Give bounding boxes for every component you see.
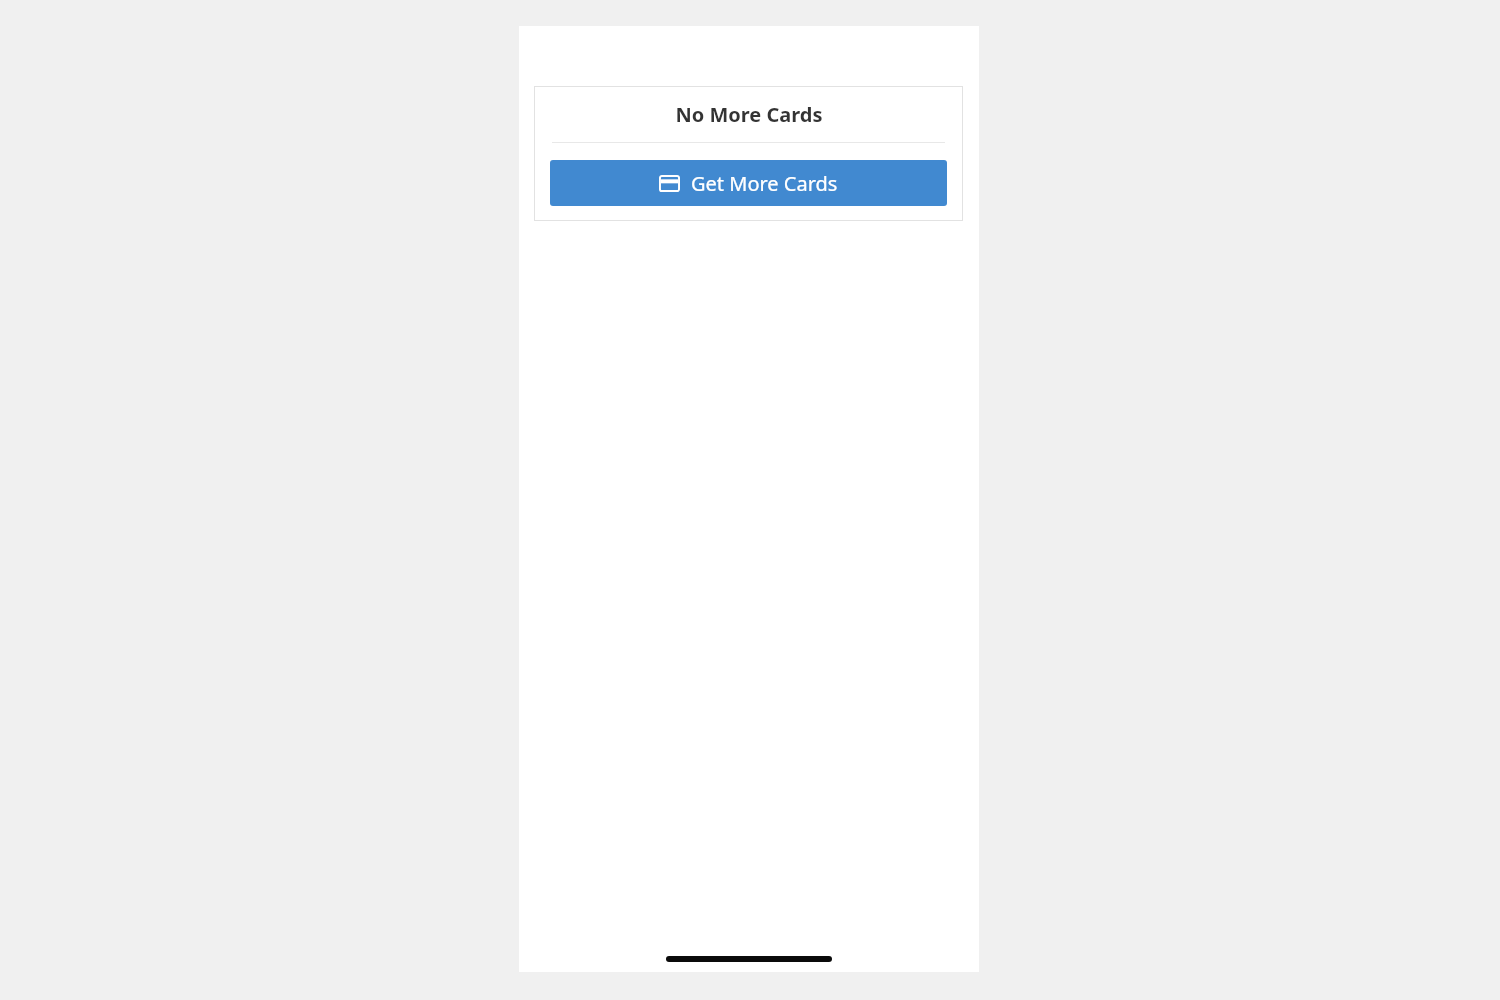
staticText: No More Cards xyxy=(675,101,823,128)
button[interactable]: Credit card xyxy=(550,160,947,206)
staticText: Get More Cards xyxy=(691,170,838,197)
other: Credit card xyxy=(659,175,680,192)
